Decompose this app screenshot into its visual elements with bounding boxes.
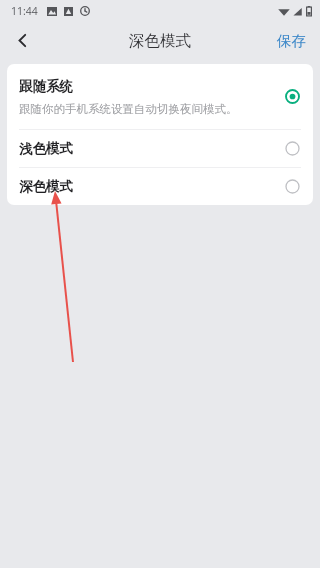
button[interactable]: 保存 bbox=[263, 22, 320, 59]
staticText: 跟随系统 bbox=[19, 78, 73, 95]
button[interactable]: 返回 bbox=[0, 22, 44, 59]
staticText: 跟随你的手机系统设置自动切换夜间模式。 bbox=[19, 102, 238, 116]
staticText: 保存 bbox=[277, 32, 306, 50]
button[interactable]: 深色模式 bbox=[7, 168, 313, 205]
button[interactable]: 跟随系统 bbox=[7, 64, 313, 129]
staticText: 深色模式 bbox=[19, 178, 285, 195]
staticText: 浅色模式 bbox=[19, 140, 285, 157]
staticText: 11:44 bbox=[11, 4, 38, 18]
button[interactable]: 浅色模式 bbox=[7, 130, 313, 167]
staticText: 深色模式 bbox=[129, 31, 191, 51]
